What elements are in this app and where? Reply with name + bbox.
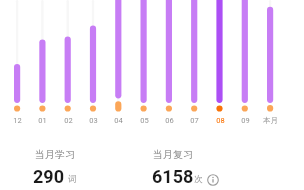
staticText: 09 [241,116,250,125]
staticText: 6158 [152,166,194,187]
staticText: 词 [68,174,77,185]
button[interactable]: 07 [180,116,208,129]
staticText: 06 [165,116,174,125]
button[interactable]: Info [207,174,219,186]
button[interactable]: 12 [3,116,31,129]
staticText: 当月复习 [153,148,193,161]
staticText: 04 [114,116,123,125]
staticText: 07 [190,116,199,125]
staticText: 次 [194,174,203,185]
button[interactable]: 05 [130,116,158,129]
button[interactable]: 06 [155,116,183,129]
button[interactable]: 08 [206,116,234,129]
button[interactable]: 03 [79,116,107,129]
staticText: 290 [33,166,64,187]
staticText: 08 [216,116,225,125]
button[interactable]: 01 [28,116,56,129]
staticText: 12 [13,116,22,125]
staticText: 03 [89,116,98,125]
staticText: 02 [64,116,73,125]
staticText: 05 [140,116,149,125]
staticText: 01 [38,116,47,125]
button[interactable]: 09 [231,116,259,129]
button[interactable]: 04 [104,116,132,129]
button[interactable]: 本月 [256,116,284,129]
button[interactable]: 02 [54,116,82,129]
staticText: 本月 [263,116,278,125]
staticText: 当月学习 [35,148,75,161]
